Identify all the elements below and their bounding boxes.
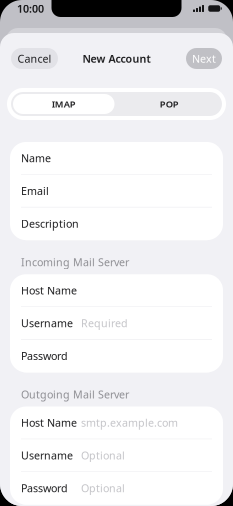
button[interactable]: Host Name [10, 274, 223, 307]
staticText: Password [21, 481, 68, 495]
button[interactable]: Name [10, 142, 223, 175]
staticText: POP [160, 98, 179, 110]
button[interactable]: Username [10, 439, 223, 472]
staticText: Required [81, 316, 128, 330]
staticText: 10:00 [17, 1, 44, 16]
button[interactable]: POP [116, 92, 222, 116]
button[interactable]: Password [10, 340, 223, 372]
staticText: Password [21, 349, 68, 363]
staticText: Next [192, 51, 216, 66]
button[interactable]: Cancel [11, 48, 58, 69]
staticText: Username [21, 448, 73, 462]
button[interactable]: Description [10, 207, 223, 240]
staticText: IMAP [52, 98, 76, 110]
staticText: Optional [81, 481, 125, 495]
button[interactable]: Username [10, 307, 223, 340]
button[interactable]: Host Name [10, 406, 223, 439]
staticText: Username [21, 316, 73, 330]
button[interactable]: Next [186, 48, 222, 69]
staticText: smtp.example.com [81, 415, 178, 430]
staticText: Description [21, 216, 79, 231]
staticText: Outgoing Mail Server [21, 387, 129, 402]
staticText: Host Name [21, 283, 77, 297]
staticText: Name [21, 151, 51, 165]
button[interactable]: IMAP [11, 92, 116, 116]
staticText: New Account [82, 51, 150, 66]
button[interactable]: Email [10, 175, 223, 207]
staticText: Cancel [17, 51, 51, 66]
staticText: Email [21, 184, 49, 198]
staticText: Optional [81, 448, 125, 462]
staticText: Incoming Mail Server [21, 255, 129, 269]
staticText: Host Name [21, 415, 77, 430]
button[interactable]: Password [10, 472, 223, 505]
